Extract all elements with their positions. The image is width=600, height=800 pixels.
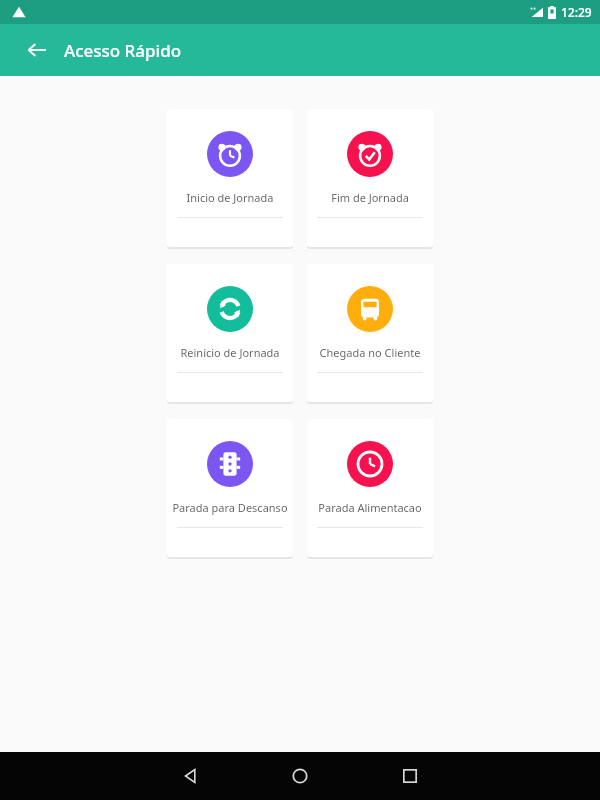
button[interactable]: Back	[160, 752, 220, 800]
staticText: 12:29	[561, 4, 592, 20]
staticText: Chegada no Cliente	[311, 345, 429, 360]
button[interactable]: Inicio de Jornada	[167, 109, 293, 249]
button[interactable]: Parada Alimentacao	[307, 419, 433, 559]
staticText: Reinicio de Jornada	[171, 345, 289, 360]
button[interactable]: Reinicio de Jornada	[167, 264, 293, 404]
staticText: Inicio de Jornada	[171, 190, 289, 205]
button[interactable]: Chegada no Cliente	[307, 264, 433, 404]
staticText: Parada Alimentacao	[311, 500, 429, 515]
button[interactable]: Fim de Jornada	[307, 109, 433, 249]
button[interactable]: Home	[270, 752, 330, 800]
staticText: Acesso Rápido	[64, 39, 182, 62]
staticText: Fim de Jornada	[311, 190, 429, 205]
staticText: Parada para Descanso	[171, 500, 289, 515]
button[interactable]: Parada para Descanso	[167, 419, 293, 559]
button[interactable]: Back	[20, 33, 54, 67]
button[interactable]: Recents	[380, 752, 440, 800]
